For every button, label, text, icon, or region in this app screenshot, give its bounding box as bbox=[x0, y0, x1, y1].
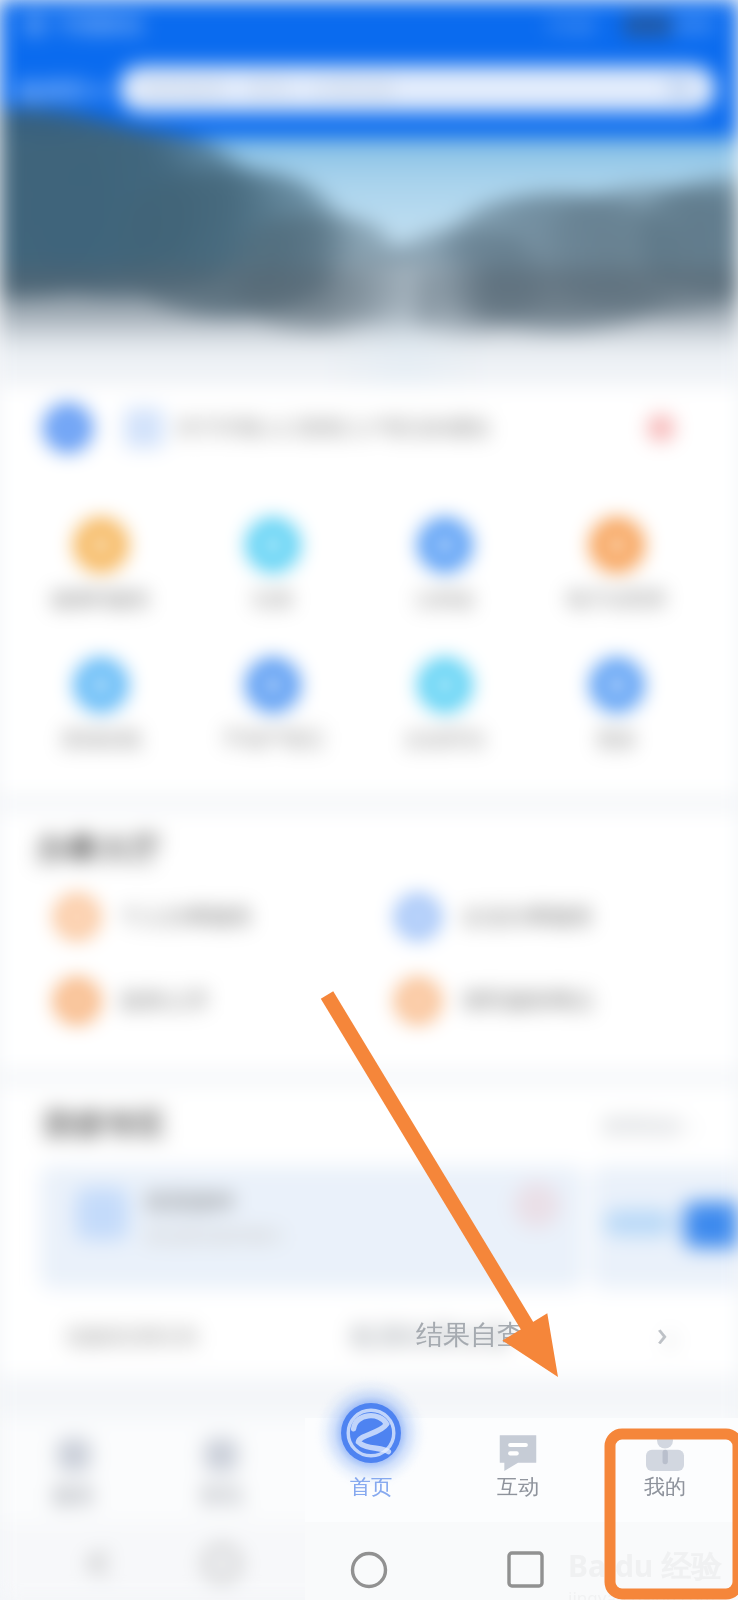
staticText: 我的 bbox=[644, 1474, 686, 1500]
staticText: 互动 bbox=[497, 1474, 539, 1500]
staticText: 个人办事服务 bbox=[121, 903, 253, 931]
staticText: 更多 bbox=[597, 727, 637, 752]
button[interactable]: 健康码服务 bbox=[15, 519, 187, 612]
staticText: 防疫专区 bbox=[45, 1106, 165, 1144]
button[interactable]: 我的 bbox=[592, 1418, 738, 1522]
button[interactable]: 关于开展人口普查入户登记的通告 bbox=[44, 386, 674, 470]
staticText: 核酸检测机构 bbox=[66, 1323, 198, 1351]
button[interactable]: 便民服务网点 bbox=[396, 979, 738, 1023]
staticText: 关于开展人口普查入户登记的通告 bbox=[176, 415, 491, 441]
button[interactable]: 疫苗接种 bbox=[40, 1166, 584, 1289]
staticText: 结果自查 bbox=[416, 1318, 524, 1352]
button[interactable]: 首页 bbox=[298, 1418, 444, 1522]
staticText: 查看更多 › bbox=[602, 1112, 694, 1139]
button[interactable]: 企业办事服务 bbox=[396, 895, 738, 939]
staticText: 资讯 bbox=[199, 1482, 243, 1510]
staticText: 首页 bbox=[350, 1474, 392, 1500]
staticText: 企业开办 bbox=[405, 727, 485, 752]
staticText: 电子证照库 bbox=[567, 587, 667, 612]
staticText: 疫苗接种 bbox=[146, 1188, 234, 1216]
button[interactable]: 不动产登记 bbox=[187, 659, 359, 752]
staticText: 亲清在线 bbox=[61, 727, 141, 752]
staticText: 搜索服务、资讯、办事指南 bbox=[143, 76, 395, 102]
staticText: ⬛⬛ 86% bbox=[624, 12, 714, 38]
staticText: › bbox=[665, 1314, 676, 1360]
button[interactable]: 亲清在线 bbox=[15, 659, 187, 752]
staticText: 公积金 bbox=[415, 587, 475, 612]
staticText: 政务公开 bbox=[121, 987, 209, 1015]
button[interactable]: 个人办事服务 bbox=[55, 895, 369, 939]
staticText: 企业办事服务 bbox=[462, 903, 594, 931]
staticText: 服务 bbox=[52, 1482, 96, 1510]
staticText: 检测结果自查 bbox=[350, 1320, 512, 1354]
button[interactable]: 互动 bbox=[445, 1418, 591, 1522]
staticText: 办事大厅 bbox=[36, 830, 160, 869]
button[interactable]: 公积金 bbox=[359, 519, 531, 612]
staticText: 便民服务网点 bbox=[462, 987, 594, 1015]
button[interactable] bbox=[592, 1166, 738, 1289]
staticText: 17:41 bbox=[546, 12, 598, 39]
staticText: 健康码服务 bbox=[51, 587, 151, 612]
button[interactable]: 社保 bbox=[187, 519, 359, 612]
staticText: 不动产登记 bbox=[223, 727, 323, 752]
button[interactable]: 更多 bbox=[531, 659, 703, 752]
button[interactable]: 电子证照库 bbox=[531, 519, 703, 612]
staticText: Baidu 经验 bbox=[568, 1545, 722, 1586]
button[interactable]: 企业开办 bbox=[359, 659, 531, 752]
staticText: › bbox=[657, 1310, 668, 1356]
button[interactable]: 政务公开 bbox=[55, 979, 369, 1023]
staticText: 社保 bbox=[253, 587, 293, 612]
staticText: 杭州市 ▾ bbox=[18, 74, 105, 105]
staticText: jingyan.baidu.com bbox=[568, 1586, 716, 1600]
staticText: 中国移动 bbox=[58, 12, 142, 38]
